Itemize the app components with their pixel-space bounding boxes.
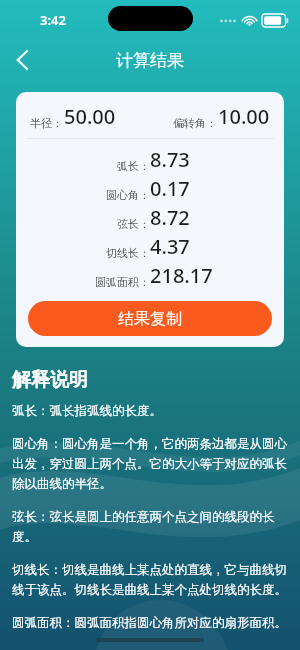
staticText: 结果复制 [118, 309, 182, 329]
staticText: 3:42 [40, 11, 66, 29]
button[interactable]: Back [0, 40, 44, 80]
staticText: 218.17 [150, 262, 213, 289]
staticText: 4.37 [150, 233, 190, 260]
staticText: 8.72 [150, 204, 190, 231]
button[interactable]: 结果复制 [28, 301, 272, 336]
staticText: 圆心角： [106, 188, 150, 202]
staticText: 切线长：切线是曲线上某点处的直线，它与曲线切线于该点。切线长是曲线上某个点处切线… [12, 562, 288, 598]
staticText: 0.17 [150, 175, 190, 202]
staticText: 半径： [30, 116, 63, 130]
staticText: 弧长： [117, 159, 150, 173]
staticText: 解释说明 [12, 368, 88, 392]
staticText: 切线长： [106, 246, 150, 260]
staticText: 50.00 [64, 103, 116, 130]
staticText: 8.73 [150, 146, 190, 173]
staticText: 圆弧面积： [95, 275, 150, 289]
staticText: 圆弧面积：圆弧面积指圆心角所对应的扇形面积。 [12, 615, 287, 631]
staticText: 弦长：弦长是圆上的任意两个点之间的线段的长度。 [12, 509, 288, 545]
staticText: 弧长：弧长指弧线的长度。 [12, 403, 162, 419]
staticText: 计算结果 [116, 50, 184, 71]
staticText: 偏转角： [173, 116, 217, 130]
staticText: 10.00 [218, 103, 270, 130]
staticText: 弦长： [117, 217, 150, 231]
staticText: 圆心角：圆心角是一个角，它的两条边都是从圆心出发，穿过圆上两个点。它的大小等于对… [12, 436, 288, 492]
